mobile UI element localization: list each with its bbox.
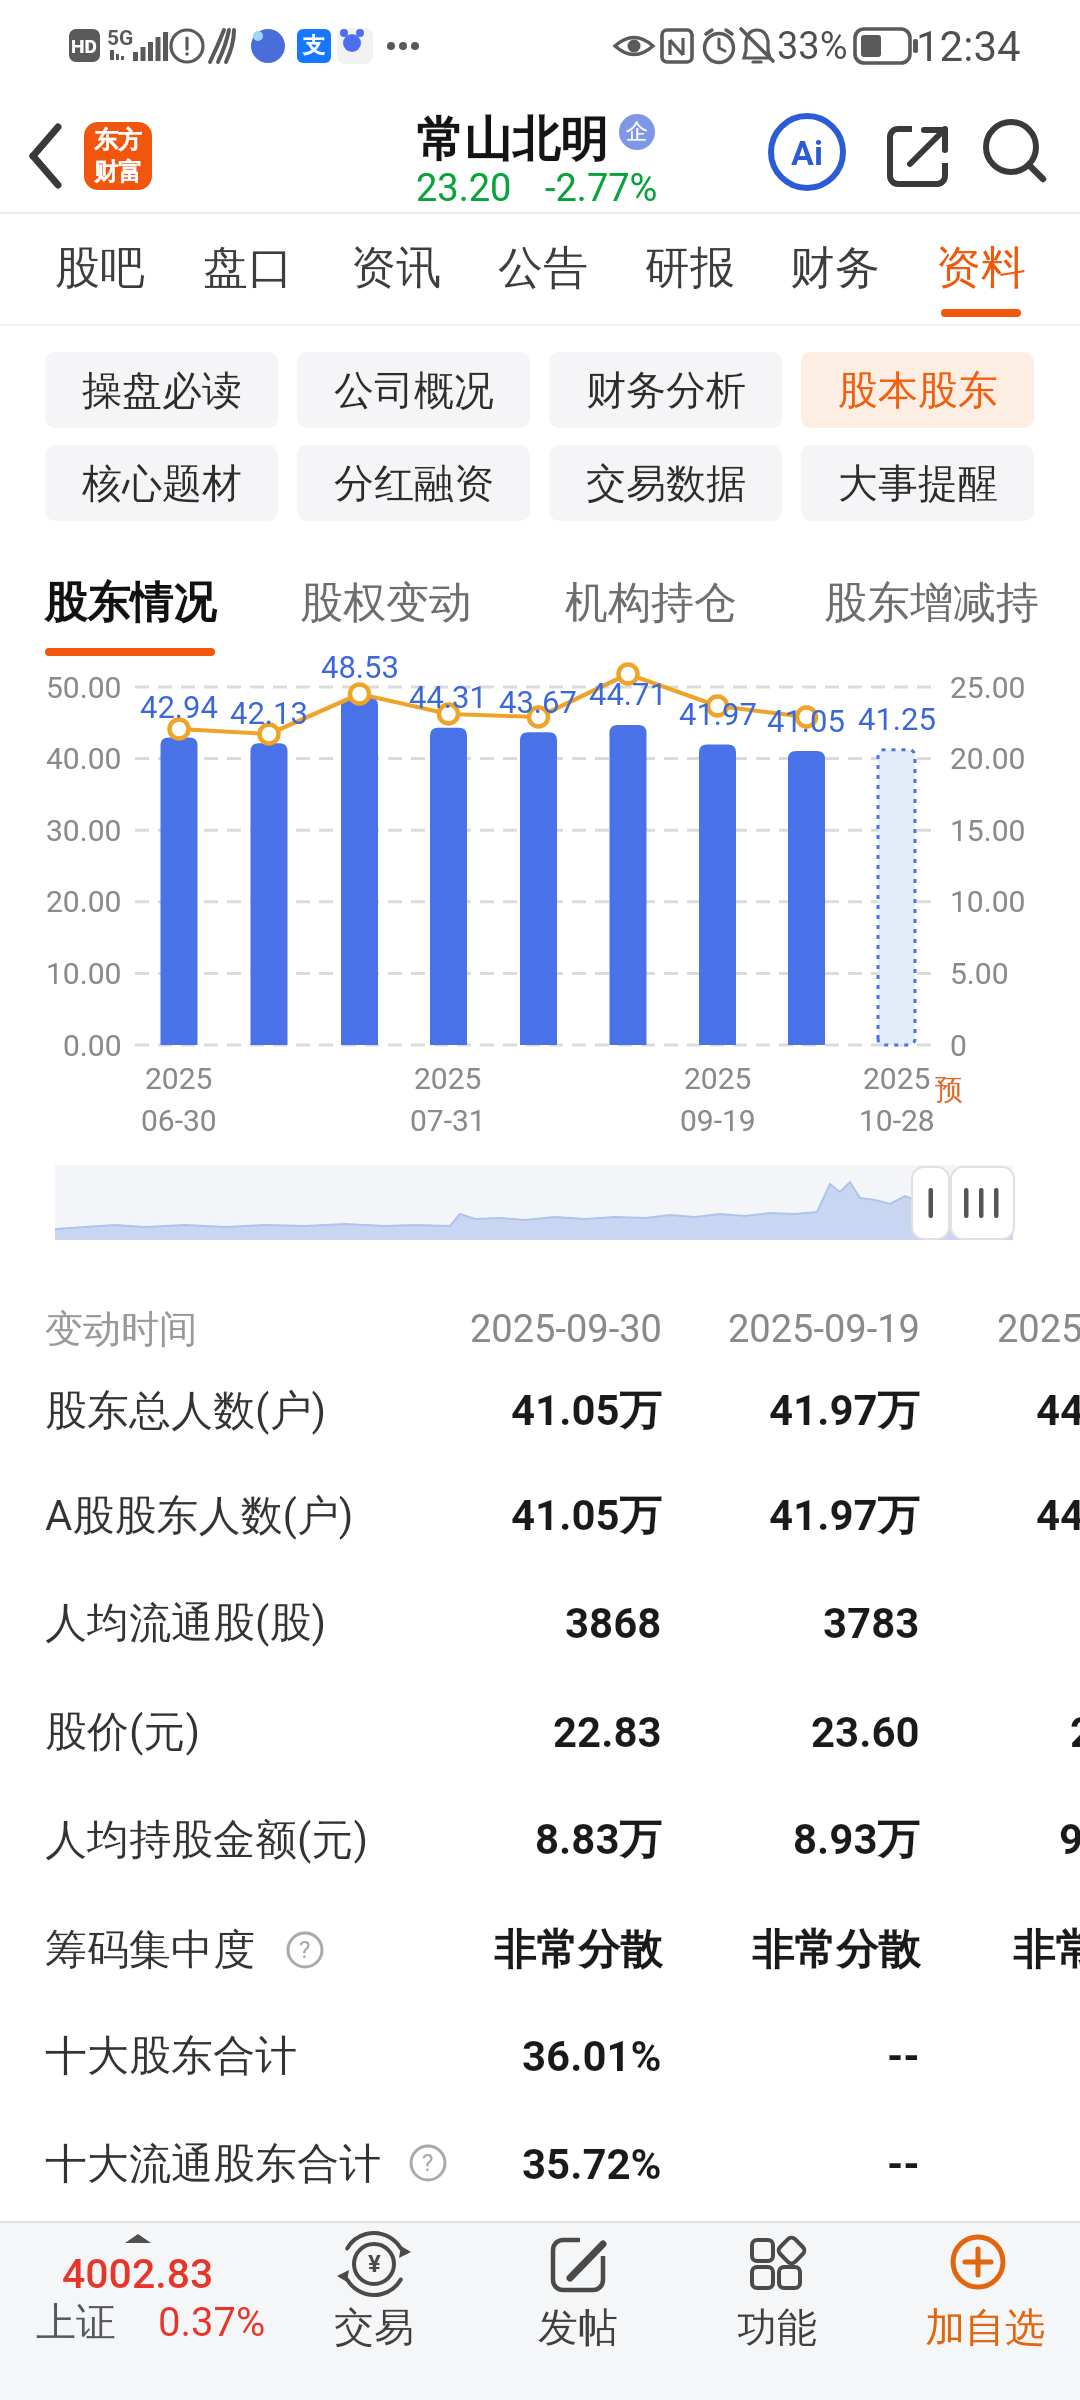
staticText: 42.94: [140, 689, 218, 725]
staticText: 股东总人数(户): [45, 1385, 326, 1438]
staticText: 变动时间: [45, 1305, 197, 1353]
button[interactable]: 功能: [702, 2230, 852, 2370]
button[interactable]: [885, 124, 950, 189]
staticText: 2025-06-30: [997, 1307, 1080, 1352]
staticText: 30.00: [46, 813, 122, 848]
staticText: 2025: [684, 1061, 752, 1096]
staticText: 09-19: [680, 1103, 756, 1138]
staticText: 股权变动: [300, 576, 472, 630]
staticText: 36.01%: [522, 2032, 662, 2081]
staticText: 股东情况: [44, 576, 216, 630]
button[interactable]: 财务分析: [549, 352, 782, 428]
staticText: 财务: [790, 240, 880, 297]
staticText: 预: [935, 1072, 963, 1107]
staticText: 15.00: [950, 813, 1026, 848]
staticText: 41.25: [858, 701, 936, 737]
button[interactable]: 资料: [916, 228, 1046, 308]
button[interactable]: 股东增减持: [821, 560, 1041, 645]
button[interactable]: [15, 2235, 295, 2365]
staticText: 2025-09-19: [728, 1307, 920, 1352]
button[interactable]: 大事提醒: [801, 445, 1034, 521]
staticText: HD: [71, 35, 97, 57]
staticText: 股本股东: [838, 365, 998, 415]
staticText: 东方: [94, 125, 142, 155]
staticText: 公司概况: [334, 365, 494, 415]
button[interactable]: [980, 120, 1050, 190]
staticText: 25.00: [950, 670, 1026, 705]
staticText: A股股东人数(户): [45, 1490, 354, 1543]
staticText: 股吧: [55, 240, 145, 297]
staticText: 常山北明: [416, 110, 608, 170]
staticText: 33%: [777, 24, 848, 69]
button[interactable]: 交易数据: [549, 445, 782, 521]
staticText: 股东增减持: [824, 576, 1039, 630]
staticText: 5G: [107, 26, 134, 51]
staticText: 44.31万: [1036, 1490, 1080, 1543]
staticText: 0.37%: [158, 2299, 266, 2346]
button[interactable]: 交易: [299, 2230, 449, 2370]
button[interactable]: 股吧: [35, 228, 165, 308]
staticText: 十大股东合计: [45, 2030, 297, 2083]
button[interactable]: 资讯: [331, 228, 461, 308]
staticText: 0: [950, 1028, 967, 1063]
button[interactable]: 加自选: [895, 2230, 1075, 2370]
staticText: 资讯: [351, 240, 441, 297]
staticText: 4002.83: [62, 2250, 214, 2298]
staticText: 06-30: [141, 1103, 217, 1138]
staticText: 盘口: [203, 240, 293, 297]
staticText: 12:34: [916, 22, 1021, 71]
staticText: 企: [626, 118, 648, 146]
button[interactable]: 股东情况: [20, 560, 240, 645]
staticText: 35.72%: [522, 2140, 662, 2189]
staticText: 操盘必读: [82, 365, 242, 415]
staticText: 41.05万: [511, 1385, 662, 1438]
button[interactable]: 公告: [478, 228, 608, 308]
staticText: 9.23万: [1059, 1814, 1080, 1867]
staticText: 41.05万: [511, 1490, 662, 1543]
staticText: 2025: [863, 1061, 931, 1096]
button[interactable]: 东方: [84, 122, 152, 190]
button[interactable]: [20, 120, 80, 200]
button[interactable]: 财务: [770, 228, 900, 308]
staticText: 8.93万: [793, 1814, 920, 1867]
button[interactable]: 公司概况: [297, 352, 530, 428]
staticText: 44.31: [409, 679, 487, 715]
button[interactable]: 股权变动: [276, 560, 496, 645]
staticText: 财富: [94, 157, 142, 187]
staticText: 23.93: [1070, 1708, 1080, 1757]
staticText: 交易数据: [586, 458, 746, 508]
staticText: 5.00: [950, 956, 1009, 991]
staticText: 公告: [498, 240, 588, 297]
button[interactable]: [770, 115, 845, 190]
staticText: 3783: [823, 1599, 920, 1648]
staticText: 23.20: [416, 166, 512, 211]
button[interactable]: 研报: [625, 228, 755, 308]
staticText: 上证: [36, 2297, 116, 2347]
staticText: 23.60: [811, 1708, 920, 1757]
staticText: 人均持股金额(元): [45, 1814, 368, 1867]
staticText: 发帖: [538, 2302, 618, 2352]
staticText: 机构持仓: [565, 576, 737, 630]
staticText: 0.00: [63, 1028, 122, 1063]
button[interactable]: 分红融资: [297, 445, 530, 521]
staticText: Ai: [791, 133, 823, 173]
staticText: 43.67: [499, 684, 577, 720]
staticText: 41.97万: [769, 1490, 920, 1543]
staticText: 非常分散: [1013, 1924, 1080, 1977]
button[interactable]: 发帖: [503, 2230, 653, 2370]
button[interactable]: 操盘必读: [45, 352, 278, 428]
staticText: 20.00: [950, 741, 1026, 776]
button[interactable]: 股本股东: [801, 352, 1034, 428]
staticText: 44.71: [589, 676, 667, 712]
staticText: 48.53: [321, 649, 399, 685]
staticText: 财务分析: [586, 365, 746, 415]
staticText: 3868: [565, 1599, 662, 1648]
staticText: 十大流通股东合计: [45, 2138, 381, 2191]
button[interactable]: 核心题材: [45, 445, 278, 521]
staticText: 研报: [645, 240, 735, 297]
button[interactable]: 盘口: [183, 228, 313, 308]
button[interactable]: 机构持仓: [541, 560, 761, 645]
staticText: 2025: [414, 1061, 482, 1096]
staticText: 44.31万: [1036, 1385, 1080, 1438]
staticText: 大事提醒: [838, 458, 998, 508]
